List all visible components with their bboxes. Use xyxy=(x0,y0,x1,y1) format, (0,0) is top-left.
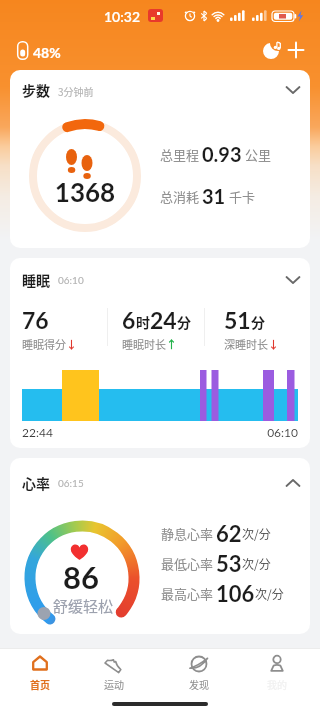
button[interactable]: 运动 xyxy=(86,650,142,694)
staticText: 分 xyxy=(177,312,191,332)
staticText: 运动 xyxy=(104,677,124,691)
button[interactable]: 首页 xyxy=(12,650,68,694)
staticText: ↓ xyxy=(268,336,279,352)
staticText: 睡眠得分 xyxy=(22,336,66,352)
staticText: 53 xyxy=(216,550,242,576)
staticText: 51 xyxy=(224,306,251,334)
staticText: 总里程 xyxy=(160,145,202,164)
staticText: 22:44 xyxy=(22,425,53,439)
staticText: 106 xyxy=(216,580,255,606)
staticText: 31 xyxy=(202,184,226,208)
button[interactable]: 步数 xyxy=(10,70,310,248)
staticText: 睡眠时长 xyxy=(122,336,166,352)
staticText: 次/分 xyxy=(242,525,271,542)
button[interactable] xyxy=(288,42,306,60)
staticText: 06:15 xyxy=(58,477,84,489)
staticText: 0.93 xyxy=(202,142,242,166)
button[interactable]: 睡眠 xyxy=(10,258,310,448)
staticText: 首页 xyxy=(30,677,50,691)
staticText: 公里 xyxy=(242,145,271,164)
staticText: 深睡时长 xyxy=(224,336,268,352)
staticText: 总消耗 xyxy=(160,187,202,206)
staticText: 我的 xyxy=(267,677,287,691)
staticText: 次/分 xyxy=(242,555,271,572)
staticText: 次/分 xyxy=(255,585,284,602)
button[interactable]: 我的 xyxy=(249,650,305,694)
staticText: 1368 xyxy=(35,176,135,207)
staticText: 静息心率 xyxy=(161,524,216,543)
staticText: 10:32 xyxy=(104,8,141,25)
staticText: 睡眠 xyxy=(22,270,50,290)
staticText: 发现 xyxy=(189,677,209,691)
staticText: 86 xyxy=(31,558,131,595)
staticText: 千卡 xyxy=(226,187,255,206)
staticText: 48% xyxy=(33,44,61,61)
button[interactable]: 发现 xyxy=(171,650,227,694)
button[interactable]: 心率 xyxy=(10,458,310,634)
staticText: 最低心率 xyxy=(161,554,216,573)
staticText: 心率 xyxy=(22,473,50,493)
staticText: 时 xyxy=(136,312,150,332)
staticText: 分 xyxy=(251,312,265,332)
staticText: ↓ xyxy=(66,336,77,352)
staticText: 06:10 xyxy=(250,425,298,439)
staticText: 62 xyxy=(216,520,242,546)
staticText: 舒缓轻松 xyxy=(41,595,125,617)
staticText: ↑ xyxy=(166,336,177,352)
staticText: 6 xyxy=(122,306,136,334)
staticText: 步数 xyxy=(22,80,50,100)
staticText: 24 xyxy=(150,306,177,334)
staticText: 3分钟前 xyxy=(58,84,94,98)
staticText: 最高心率 xyxy=(161,584,216,603)
staticText: 06:10 xyxy=(58,274,84,286)
staticText: 76 xyxy=(22,306,49,334)
